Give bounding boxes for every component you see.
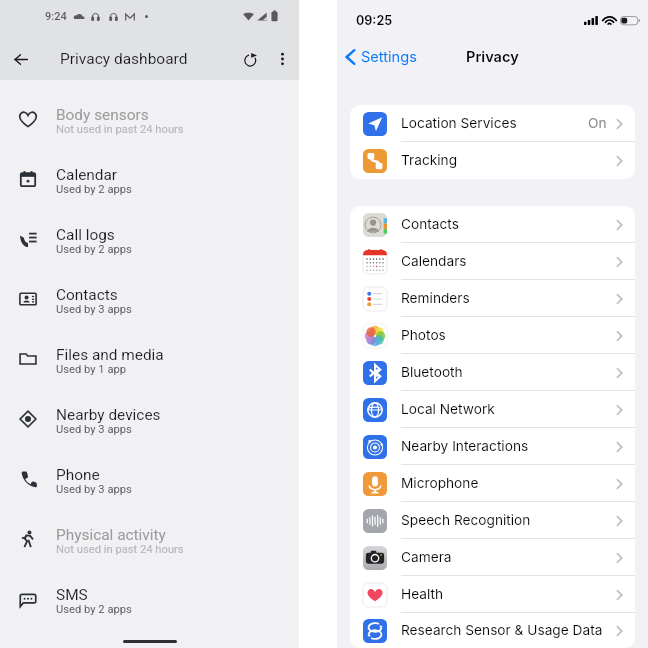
button[interactable]: Tracking <box>350 142 635 179</box>
staticText: Used by 3 apps <box>56 483 132 496</box>
button[interactable]: Nearby devices <box>0 389 299 449</box>
staticText: Bluetooth <box>401 364 463 381</box>
button[interactable]: More options <box>264 41 300 77</box>
button[interactable]: Local Network <box>350 391 635 428</box>
button[interactable]: Phone <box>0 449 299 509</box>
staticText: Used by 3 apps <box>56 303 132 316</box>
staticText: Files and media <box>56 346 164 364</box>
staticText: Used by 1 app <box>56 363 127 376</box>
button[interactable]: SMS <box>0 569 299 629</box>
button[interactable]: Contacts <box>0 269 299 329</box>
staticText: Nearby devices <box>56 406 161 424</box>
staticText: Physical activity <box>56 526 166 544</box>
staticText: Used by 3 apps <box>56 423 132 436</box>
staticText: Calendars <box>401 253 467 270</box>
staticText: Used by 2 apps <box>56 603 132 616</box>
staticText: 9:24 <box>45 10 67 23</box>
button[interactable]: Reminders <box>350 280 635 317</box>
staticText: Speech Recognition <box>401 512 531 529</box>
staticText: Calendar <box>56 166 118 184</box>
staticText: Body sensors <box>56 106 149 124</box>
staticText: Not used in past 24 hours <box>56 543 184 556</box>
staticText: Photos <box>401 327 446 344</box>
button[interactable]: Research Sensor & Usage Data <box>350 613 635 648</box>
button[interactable]: Photos <box>350 317 635 354</box>
button[interactable]: Camera <box>350 539 635 576</box>
button[interactable]: Refresh <box>232 41 268 77</box>
staticText: Research Sensor & Usage Data <box>401 622 603 639</box>
staticText: Settings <box>361 48 417 66</box>
staticText: Used by 2 apps <box>56 183 132 196</box>
button[interactable]: Contacts <box>350 206 635 243</box>
button[interactable]: Calendars <box>350 243 635 280</box>
staticText: SMS <box>56 586 88 604</box>
button[interactable]: Health <box>350 576 635 613</box>
staticText: Call logs <box>56 226 115 244</box>
button[interactable]: Physical activity <box>0 509 299 569</box>
staticText: Health <box>401 586 444 603</box>
staticText: Contacts <box>401 216 459 233</box>
button[interactable]: Calendar <box>0 149 299 209</box>
staticText: Location Services <box>401 115 517 132</box>
button[interactable]: Back <box>3 41 39 77</box>
button[interactable]: Files and media <box>0 329 299 389</box>
button[interactable]: Microphone <box>350 465 635 502</box>
staticText: Camera <box>401 549 452 566</box>
button[interactable]: Speech Recognition <box>350 502 635 539</box>
staticText: Privacy <box>466 48 519 66</box>
staticText: 09:25 <box>356 13 393 28</box>
button[interactable]: Location Services <box>350 105 635 142</box>
button[interactable]: Call logs <box>0 209 299 269</box>
button[interactable]: Nearby Interactions <box>350 428 635 465</box>
staticText: Nearby Interactions <box>401 438 529 455</box>
staticText: Reminders <box>401 290 470 307</box>
staticText: Phone <box>56 466 100 484</box>
staticText: Local Network <box>401 401 495 418</box>
staticText: Contacts <box>56 286 118 304</box>
button[interactable]: Body sensors <box>0 89 299 149</box>
staticText: Not used in past 24 hours <box>56 123 184 136</box>
staticText: Microphone <box>401 475 479 492</box>
staticText: Used by 2 apps <box>56 243 132 256</box>
button[interactable]: Settings <box>345 48 417 66</box>
staticText: Privacy dashboard <box>60 50 188 68</box>
staticText: On <box>588 115 607 132</box>
staticText: Tracking <box>401 152 458 169</box>
button[interactable]: Bluetooth <box>350 354 635 391</box>
